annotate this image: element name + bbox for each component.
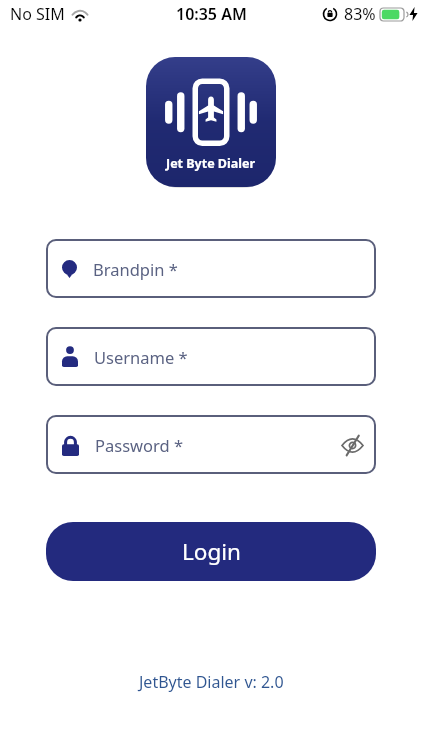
button[interactable]: Brandpin * <box>46 239 376 298</box>
staticText: 83% <box>344 3 376 25</box>
staticText: Brandpin * <box>93 258 178 280</box>
staticText: Jet Byte Dialer <box>166 155 256 172</box>
button[interactable]: Username * <box>46 327 376 386</box>
staticText: Password * <box>95 434 184 456</box>
staticText: Login <box>182 536 241 567</box>
button[interactable] <box>337 430 367 460</box>
staticText: Username * <box>94 346 188 368</box>
staticText: 10:35 AM <box>176 3 247 25</box>
button[interactable]: Login <box>46 522 376 581</box>
button[interactable]: Password * <box>46 415 376 474</box>
staticText: JetByte Dialer v: 2.0 <box>139 671 284 693</box>
staticText: No SIM <box>10 3 65 25</box>
button[interactable]: Jet Byte Dialer <box>146 57 276 187</box>
